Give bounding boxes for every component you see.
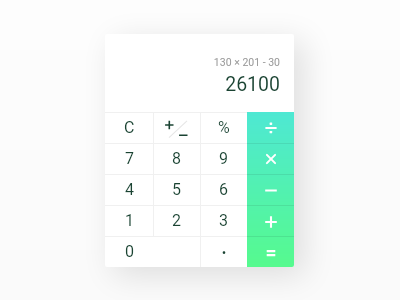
staticText: 0: [125, 242, 134, 261]
button[interactable]: 5: [153, 174, 200, 205]
staticText: 130 × 201 - 30: [213, 56, 280, 68]
button[interactable]: Equals: [247, 236, 294, 267]
staticText: 5: [172, 180, 181, 199]
staticText: 9: [219, 149, 228, 168]
button[interactable]: 2: [153, 205, 200, 236]
button[interactable]: Subtract: [247, 174, 294, 205]
button[interactable]: Add: [247, 205, 294, 236]
staticText: 26100: [225, 73, 280, 96]
button[interactable]: Toggle sign: [153, 112, 200, 143]
button[interactable]: 6: [200, 174, 247, 205]
button[interactable]: Multiply: [247, 143, 294, 174]
staticText: 2: [172, 211, 181, 230]
staticText: C: [124, 118, 135, 137]
button[interactable]: 9: [200, 143, 247, 174]
button[interactable]: 3: [200, 205, 247, 236]
staticText: 7: [125, 149, 134, 168]
button[interactable]: 7: [105, 143, 153, 174]
button[interactable]: Decimal point: [200, 236, 247, 267]
button[interactable]: 1: [105, 205, 153, 236]
button[interactable]: C: [105, 112, 153, 143]
button[interactable]: %: [200, 112, 247, 143]
button[interactable]: Divide: [247, 112, 294, 143]
staticText: 1: [125, 211, 134, 230]
staticText: 4: [125, 180, 134, 199]
button[interactable]: 0: [105, 236, 153, 267]
staticText: %: [218, 118, 230, 137]
staticText: 3: [219, 211, 228, 230]
staticText: 8: [172, 149, 181, 168]
other: Toggle sign: [165, 116, 189, 140]
button[interactable]: 4: [105, 174, 153, 205]
staticText: 6: [219, 180, 228, 199]
button[interactable]: 8: [153, 143, 200, 174]
other: Decimal point: [219, 247, 229, 257]
